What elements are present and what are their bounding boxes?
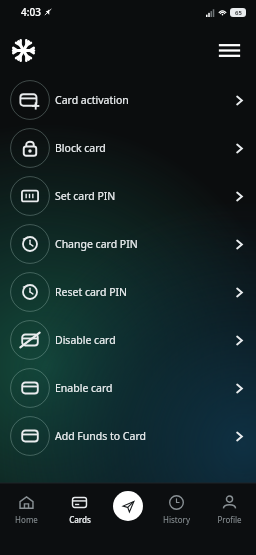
button[interactable]: Home [1,494,52,525]
staticText: Card activation [55,93,129,107]
staticText: Disable card [55,333,116,347]
button[interactable]: Cards [54,494,105,525]
staticText: 65 [235,9,242,17]
button[interactable]: Card activation [0,76,256,124]
button[interactable]: Profile [204,494,255,525]
button[interactable]: Block card [0,124,256,172]
button[interactable]: Set card PIN [0,172,256,220]
staticText: Enable card [55,381,113,395]
button[interactable]: Add Funds to Card [0,412,256,460]
staticText: Reset card PIN [55,285,128,299]
staticText: Add Funds to Card [55,429,146,443]
button[interactable]: Enable card [0,364,256,412]
button[interactable]: Menu [214,35,244,65]
button[interactable]: Send [113,491,143,521]
staticText: Set card PIN [55,189,116,203]
button[interactable]: Change card PIN [0,220,256,268]
button[interactable]: Disable card [0,316,256,364]
staticText: Profile [217,514,242,525]
button[interactable]: App logo [9,36,37,64]
staticText: Cards [69,514,91,525]
staticText: Block card [55,141,106,155]
staticText: History [163,514,190,525]
button[interactable]: Reset card PIN [0,268,256,316]
button[interactable]: History [151,494,202,525]
staticText: Change card PIN [55,237,138,251]
staticText: 4:03 [21,5,41,19]
staticText: Home [15,514,38,525]
